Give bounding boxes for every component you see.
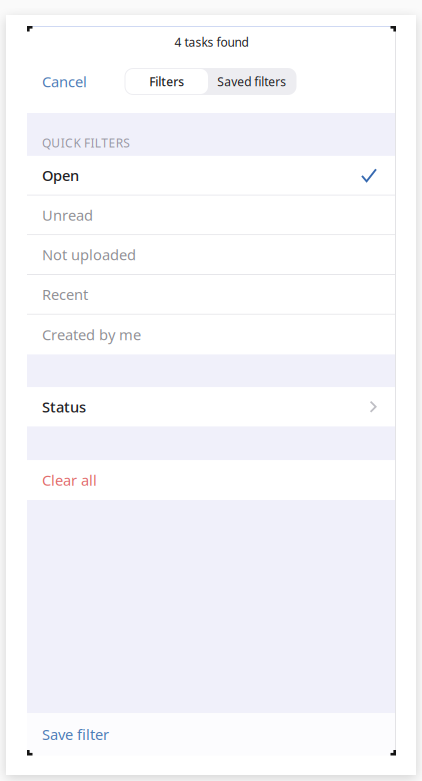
staticText: Unread bbox=[42, 205, 93, 225]
staticText: Save filter bbox=[42, 725, 109, 744]
staticText: QUICK FILTERS bbox=[42, 135, 130, 151]
button[interactable]: Not uploaded bbox=[27, 235, 396, 274]
staticText: 4 tasks found bbox=[174, 34, 248, 50]
button[interactable]: Clear all bbox=[27, 460, 396, 500]
button[interactable]: Save filter bbox=[27, 713, 396, 755]
button[interactable]: Status bbox=[27, 387, 396, 426]
button[interactable]: Cancel bbox=[27, 68, 99, 95]
staticText: Open bbox=[42, 166, 79, 185]
button[interactable]: Saved filters bbox=[208, 69, 295, 94]
staticText: Saved filters bbox=[217, 73, 286, 89]
button[interactable]: Unread bbox=[27, 196, 396, 234]
staticText: Filters bbox=[149, 73, 184, 89]
staticText: Recent bbox=[42, 285, 88, 304]
button[interactable]: Filters bbox=[125, 69, 208, 94]
button[interactable]: Open bbox=[27, 156, 396, 195]
staticText: Created by me bbox=[42, 325, 141, 344]
staticText: Clear all bbox=[42, 470, 97, 490]
staticText: Not uploaded bbox=[42, 245, 136, 264]
button[interactable]: Recent bbox=[27, 275, 396, 314]
button[interactable]: Created by me bbox=[27, 315, 396, 354]
staticText: Status bbox=[42, 397, 86, 417]
staticText: Cancel bbox=[42, 72, 87, 91]
